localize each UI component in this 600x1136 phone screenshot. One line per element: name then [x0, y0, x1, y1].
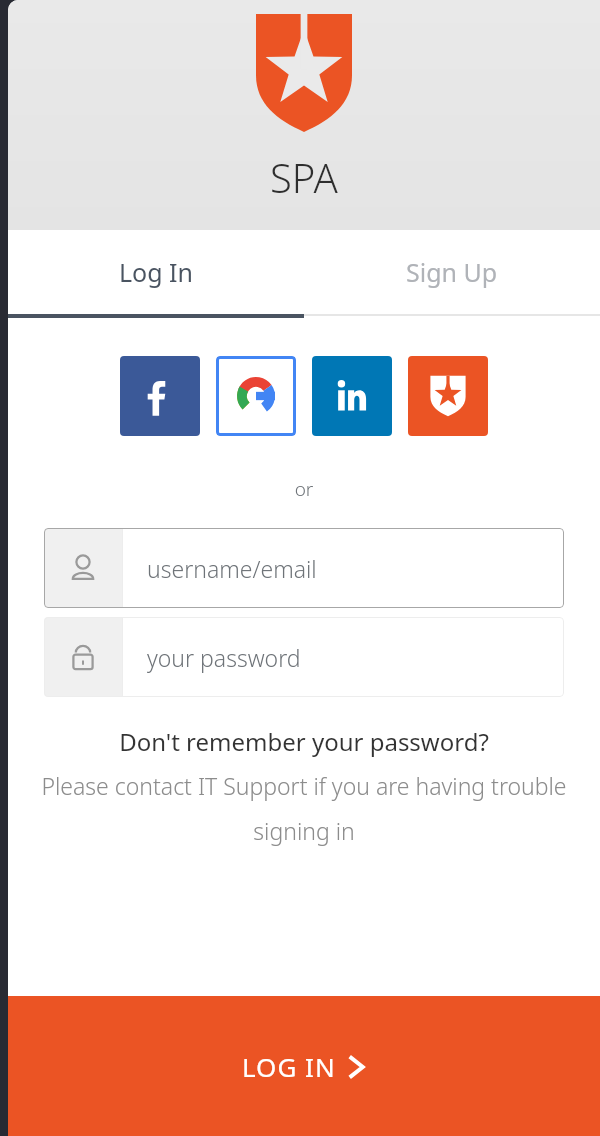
- staticText: Log In: [119, 255, 194, 289]
- staticText: username/email: [147, 553, 317, 584]
- button[interactable]: Sign in with Facebook: [120, 356, 200, 436]
- button[interactable]: LOG IN: [8, 996, 600, 1136]
- button[interactable]: Sign in with Google: [216, 356, 296, 436]
- button[interactable]: Sign Up: [304, 230, 600, 314]
- button[interactable]: your password: [44, 617, 564, 697]
- button[interactable]: Log In: [8, 230, 304, 314]
- staticText: Sign Up: [406, 255, 498, 289]
- button[interactable]: Sign in with LinkedIn: [312, 356, 392, 436]
- staticText: your password: [147, 642, 301, 673]
- button[interactable]: username/email: [44, 528, 564, 608]
- staticText: SPA: [270, 150, 338, 204]
- button[interactable]: Sign in with Auth0: [408, 356, 488, 436]
- staticText: Don't remember your password?: [119, 725, 489, 758]
- staticText: or: [8, 476, 600, 502]
- staticText: Please contact IT Support if you are hav…: [38, 770, 570, 847]
- staticText: LOG IN: [242, 1049, 336, 1084]
